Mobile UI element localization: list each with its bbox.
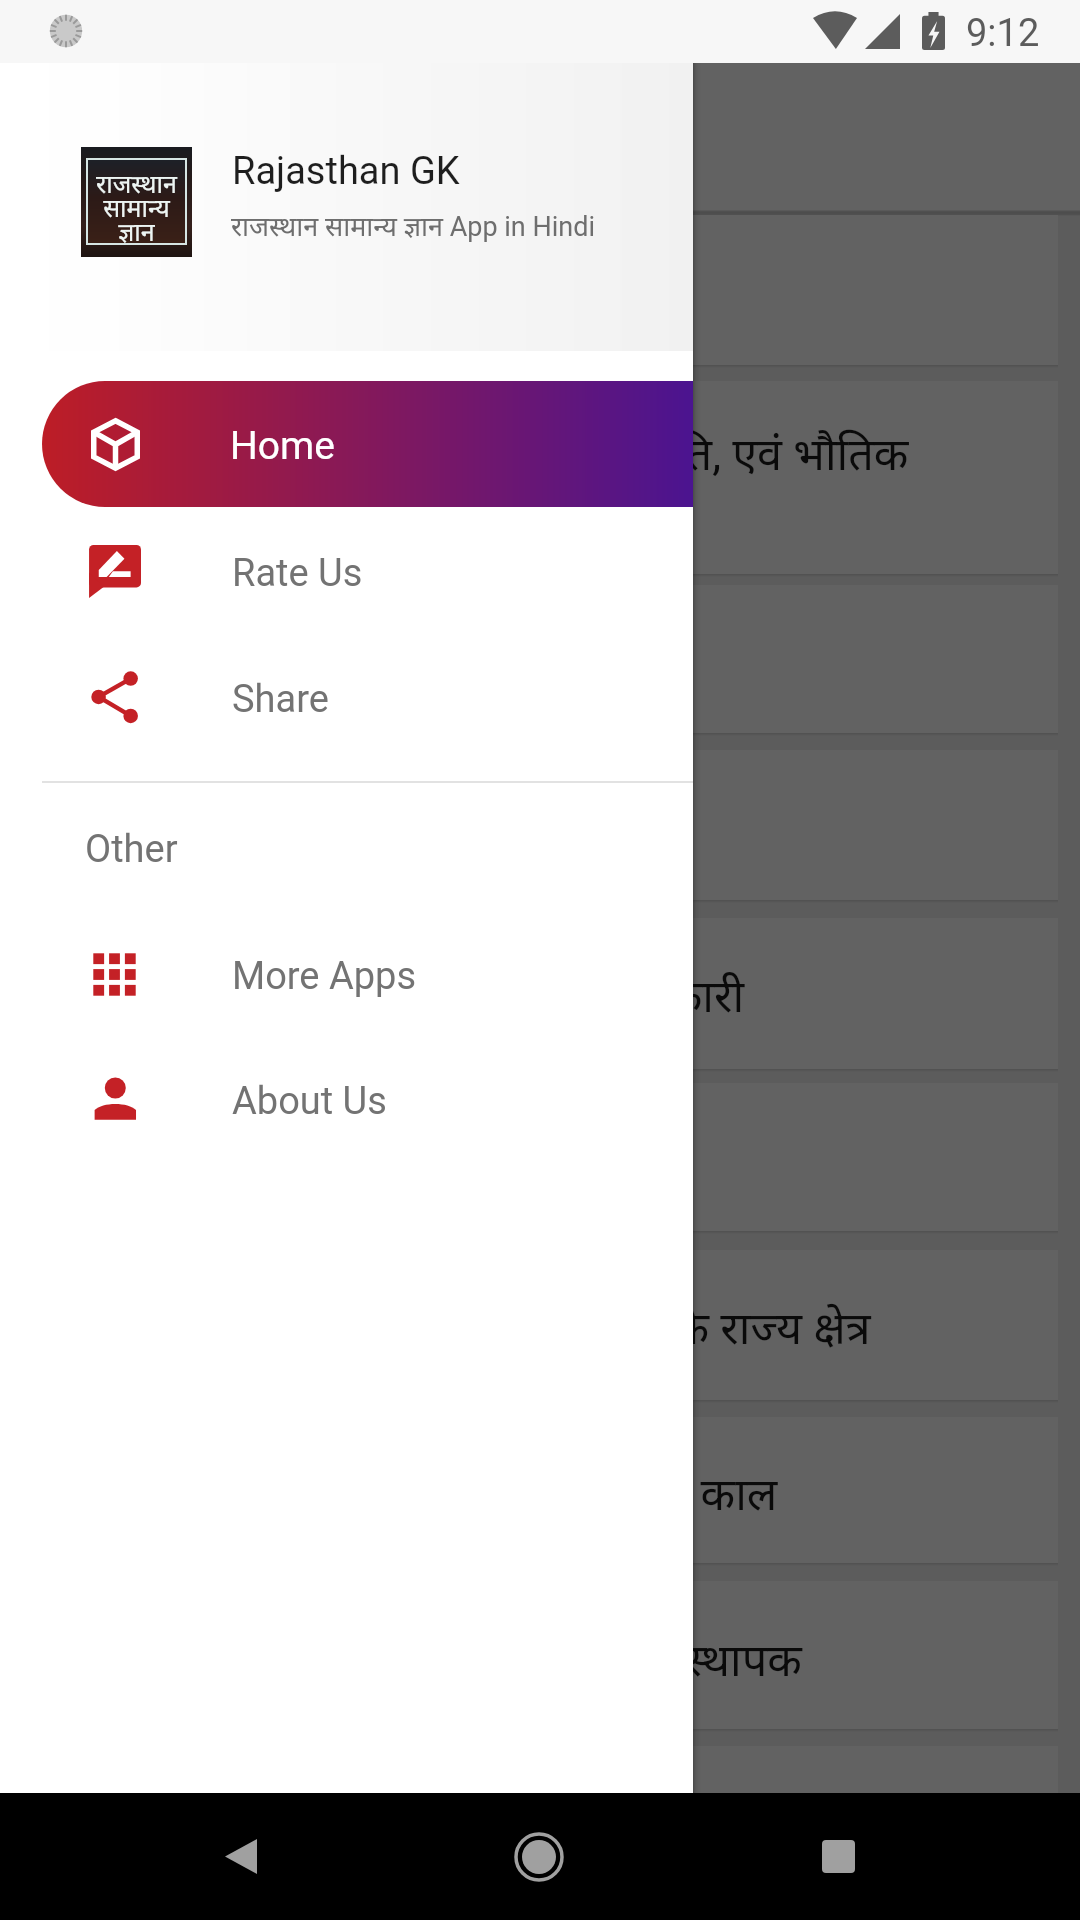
staticText: About Us [232,1079,387,1124]
staticText: Rajasthan GK [232,149,460,194]
button[interactable] [22,585,1058,733]
button[interactable] [22,1581,1058,1729]
button[interactable] [22,215,1058,365]
staticText: राजस्थान सामान्य ज्ञान [81,166,192,248]
staticText: राजस्थान का प्राचीन काल [373,1462,1080,1523]
staticText: राजस्थान सामान्य जानकारी [310,964,1080,1025]
staticText: 9:12 [966,11,1040,56]
button[interactable]: More Apps [0,911,693,1037]
button[interactable] [22,1417,1058,1563]
button[interactable] [22,1250,1058,1400]
staticText: Other [85,827,178,872]
button[interactable]: Rate Us [0,508,693,634]
button[interactable]: Home [42,381,693,507]
staticText: राजस्थान का इतिहास, संस्कृति, एवं भौतिक [233,422,1080,483]
staticText: More Apps [232,954,417,999]
staticText: राजस्थान के राज्य क्षेत्र [518,1296,1080,1357]
button[interactable] [22,1746,1058,1896]
staticText: Home [230,423,335,469]
button[interactable]: About Us [0,1036,693,1162]
button[interactable] [22,918,1058,1069]
button[interactable]: Share [0,634,693,760]
button[interactable]: Back [161,1793,321,1920]
staticText: Rate Us [232,551,363,596]
staticText: राजस्थान सामान्य ज्ञान App in Hindi [231,207,595,244]
button[interactable] [22,381,1058,574]
button[interactable]: Recents [758,1793,918,1920]
staticText: Share [232,677,329,722]
button[interactable] [22,750,1058,900]
staticText: राजस्थान के संस्थापक [452,1628,1080,1689]
button[interactable]: Home [459,1793,619,1920]
button[interactable] [22,1083,1058,1231]
